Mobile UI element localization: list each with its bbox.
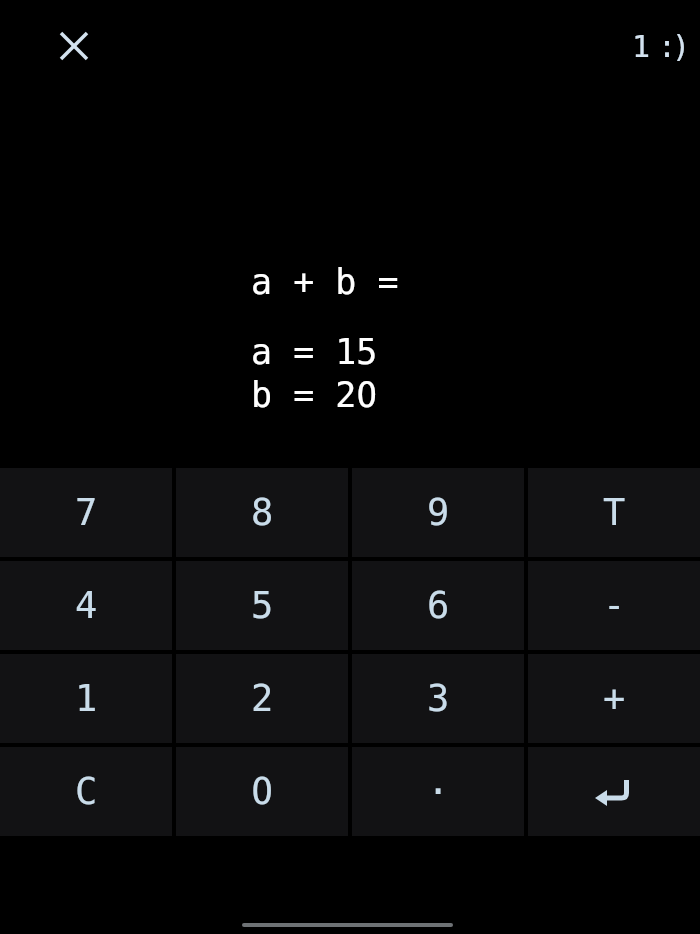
staticText: b = 20 (251, 375, 378, 416)
staticText: 4 (75, 584, 98, 627)
staticText: 9 (427, 491, 450, 534)
button[interactable] (528, 747, 700, 836)
button[interactable]: - (528, 561, 700, 650)
button[interactable]: 7 (0, 468, 172, 557)
staticText: 1 (75, 677, 98, 720)
staticText: C (75, 770, 98, 813)
staticText: 7 (75, 491, 98, 534)
staticText: T (603, 491, 626, 534)
staticText: + (603, 677, 626, 720)
button[interactable]: 9 (352, 468, 524, 557)
staticText: 0 (251, 770, 274, 813)
staticText: 5 (251, 584, 274, 627)
staticText: a = 15 (251, 332, 378, 373)
staticText: 8 (251, 491, 274, 534)
staticText: 3 (427, 677, 450, 720)
staticText: 1 (632, 29, 651, 64)
staticText: - (603, 584, 626, 627)
button[interactable]: 2 (176, 654, 348, 743)
button[interactable]: 3 (352, 654, 524, 743)
staticText: · (427, 770, 450, 813)
button[interactable]: C (0, 747, 172, 836)
button[interactable]: 1 (0, 654, 172, 743)
button[interactable]: 6 (352, 561, 524, 650)
button[interactable]: 4 (0, 561, 172, 650)
button[interactable]: 0 (176, 747, 348, 836)
staticText: 2 (251, 677, 274, 720)
button[interactable]: 5 (176, 561, 348, 650)
staticText: 6 (427, 584, 450, 627)
button[interactable] (50, 22, 98, 70)
staticText: ) (672, 29, 691, 64)
button[interactable]: + (528, 654, 700, 743)
button[interactable]: 8 (176, 468, 348, 557)
staticText: : (658, 29, 677, 64)
button[interactable]: T (528, 468, 700, 557)
button[interactable]: · (352, 747, 524, 836)
staticText: a + b = (251, 262, 399, 303)
